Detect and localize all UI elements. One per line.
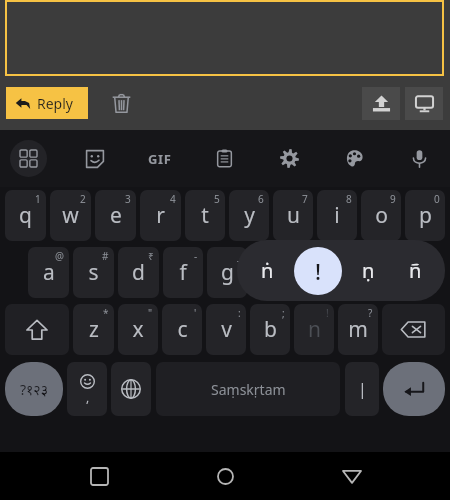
button[interactable]: Clipboard [206,140,243,177]
button[interactable]: l [383,247,423,298]
button[interactable]: n [294,304,334,355]
button[interactable]: h [251,247,291,298]
staticText: Reply [37,94,73,113]
button[interactable]: GIF [141,140,178,177]
button[interactable]: p [405,190,445,241]
button[interactable]: b [250,304,290,355]
button[interactable]: Upload [362,87,400,120]
button[interactable]: Back [324,452,380,500]
button[interactable]: Emoji [67,362,107,416]
staticText: 4 [170,192,176,206]
staticText: 9 [390,192,396,206]
button[interactable]: q [5,190,46,241]
staticText: y [244,201,255,230]
button[interactable]: k [339,247,379,298]
button[interactable]: y [229,190,269,241]
staticText: 5 [214,192,220,206]
button[interactable]: t [185,190,225,241]
button[interactable]: j [295,247,335,298]
staticText: e [110,201,122,230]
button[interactable]: m [338,304,378,355]
staticText: 2 [80,192,86,206]
staticText: ! [315,256,322,286]
staticText: p [419,201,432,230]
staticText: n [308,315,321,344]
button[interactable]: Voice input [401,140,438,177]
button[interactable]: s [73,247,114,298]
staticText: a [43,258,55,287]
button[interactable]: Theme [336,140,373,177]
button[interactable]: ?१२३ [5,362,63,416]
staticText: ( [327,249,330,263]
button[interactable]: Reply [6,87,88,119]
staticText: q [19,201,32,230]
staticText: s [88,258,99,287]
button[interactable]: ṇ [345,240,392,301]
button[interactable]: w [50,190,91,241]
button[interactable]: Shift [5,304,69,355]
button[interactable]: Delete [104,86,138,120]
staticText: g [221,258,234,287]
button[interactable]: d [118,247,159,298]
button[interactable]: e [95,190,136,241]
button[interactable] [5,0,444,76]
staticText: m [348,315,368,344]
button[interactable]: z [73,304,114,355]
button[interactable]: Stickers [76,140,113,177]
button[interactable]: f [163,247,203,298]
button[interactable]: Saṃskṛtam [156,362,340,416]
staticText: ñ [409,257,422,284]
button[interactable]: Enter [383,362,445,416]
button[interactable]: Switch language [111,362,151,416]
staticText: : [238,306,241,320]
button[interactable]: Recent apps [71,452,127,500]
button[interactable]: ! [294,247,342,295]
staticText: ? [368,306,373,320]
staticText: f [179,258,187,287]
staticText: * [103,306,109,320]
button[interactable]: Home [197,452,253,500]
button[interactable]: i [317,190,357,241]
button[interactable]: Display [405,87,443,120]
staticText: 7 [302,192,308,206]
staticText: Saṃskṛtam [211,380,286,399]
button[interactable]: r [140,190,181,241]
staticText: _ [237,249,242,263]
staticText: - [194,249,198,263]
button[interactable]: v [206,304,246,355]
staticText: ; [282,306,285,320]
button[interactable]: u [273,190,313,241]
staticText: ₹ [148,249,154,263]
button[interactable]: Backspace [382,304,445,355]
button[interactable]: ñ [392,240,439,301]
staticText: t [201,201,209,230]
button[interactable]: | [345,362,379,416]
staticText: GIF [148,150,172,168]
staticText: b [264,315,277,344]
staticText: i [334,201,340,230]
staticText: , [86,389,90,405]
button[interactable]: c [162,304,202,355]
staticText: ! [326,306,329,320]
button[interactable]: ṅ [243,240,291,301]
button[interactable]: a [28,247,69,298]
staticText: # [102,249,109,263]
staticText: | [358,378,367,400]
staticText: " [148,306,153,320]
staticText: x [132,315,144,344]
button[interactable]: g [207,247,247,298]
button[interactable]: Keyboard modes [10,140,47,177]
staticText: r [156,201,165,230]
button[interactable]: Settings [271,140,308,177]
staticText: 6 [258,192,264,206]
staticText: @ [55,249,64,263]
staticText: h [265,258,278,287]
staticText: 8 [346,192,352,206]
button[interactable]: x [118,304,158,355]
staticText: o [375,201,388,230]
button[interactable]: o [361,190,401,241]
